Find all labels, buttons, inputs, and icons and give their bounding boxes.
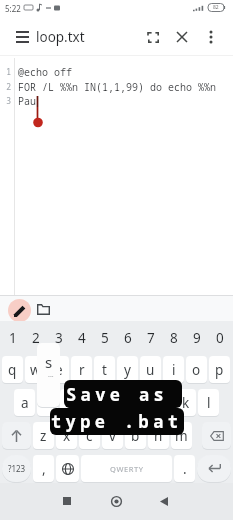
button[interactable]: 5 xyxy=(94,324,115,351)
staticText: 3 xyxy=(55,329,63,347)
staticText: 3 xyxy=(6,95,11,106)
button[interactable] xyxy=(102,487,130,515)
staticText: y xyxy=(124,361,131,379)
staticText: 2 xyxy=(32,329,40,347)
button[interactable] xyxy=(170,25,194,49)
staticText: 5:22 xyxy=(5,3,21,14)
button[interactable]: 2 xyxy=(25,324,46,351)
button[interactable]: 7 xyxy=(140,324,161,351)
button[interactable]: 0 xyxy=(209,324,230,351)
button[interactable]: n xyxy=(148,422,169,449)
button[interactable]: y xyxy=(117,356,138,383)
button[interactable] xyxy=(8,299,31,322)
staticText: , xyxy=(42,460,46,478)
button[interactable]: c xyxy=(79,422,100,449)
staticText: 8 xyxy=(170,329,178,347)
staticText: l xyxy=(207,394,211,412)
button[interactable]: l xyxy=(198,389,219,416)
staticText: o xyxy=(192,361,201,379)
button[interactable]: . xyxy=(174,455,195,482)
button[interactable] xyxy=(199,25,223,49)
button[interactable]: a xyxy=(14,389,35,416)
button[interactable]: x xyxy=(56,422,77,449)
button[interactable]: 9 xyxy=(186,324,207,351)
staticText: 4 xyxy=(78,329,86,347)
button[interactable]: ?123 xyxy=(2,455,31,482)
staticText: ... xyxy=(48,370,54,380)
button[interactable]: w xyxy=(25,356,46,383)
staticText: 9 xyxy=(193,329,201,347)
button[interactable]: b xyxy=(125,422,146,449)
button[interactable]: u xyxy=(140,356,161,383)
button[interactable]: r xyxy=(71,356,92,383)
staticText: 6 xyxy=(124,329,132,347)
staticText: r xyxy=(79,361,85,379)
button[interactable]: i xyxy=(163,356,184,383)
button[interactable]: p xyxy=(209,356,230,383)
staticText: Pau xyxy=(18,94,36,107)
staticText: z xyxy=(40,427,47,445)
staticText: s xyxy=(44,394,51,412)
staticText: 1 xyxy=(9,329,17,347)
button[interactable]: f xyxy=(83,389,104,416)
button[interactable] xyxy=(53,487,81,515)
button[interactable]: k xyxy=(175,389,196,416)
staticText: 7 xyxy=(147,329,155,347)
staticText: s xyxy=(45,352,53,372)
button[interactable]: 6 xyxy=(117,324,138,351)
staticText: x xyxy=(63,427,71,445)
button[interactable]: j xyxy=(152,389,173,416)
button[interactable]: q xyxy=(2,356,23,383)
staticText: n xyxy=(154,427,163,445)
button[interactable] xyxy=(197,455,231,482)
staticText: 5 xyxy=(101,329,109,347)
button[interactable] xyxy=(202,422,231,449)
button[interactable]: d xyxy=(60,389,81,416)
button[interactable]: h xyxy=(129,389,150,416)
staticText: g xyxy=(112,394,121,412)
button[interactable]: 4 xyxy=(71,324,92,351)
button[interactable] xyxy=(2,422,31,449)
button[interactable] xyxy=(56,455,79,482)
staticText: 1 xyxy=(6,66,11,77)
staticText: a xyxy=(21,394,29,412)
button[interactable]: z xyxy=(33,422,54,449)
staticText: j xyxy=(161,394,165,412)
staticText: 2 xyxy=(6,81,11,92)
button[interactable]: t xyxy=(94,356,115,383)
staticText: w xyxy=(30,361,41,379)
staticText: . xyxy=(183,460,187,478)
staticText: ?123 xyxy=(8,463,26,474)
staticText: h xyxy=(135,394,144,412)
staticText: i xyxy=(172,361,176,379)
staticText: e xyxy=(55,361,63,379)
staticText: d xyxy=(66,394,75,412)
staticText: b xyxy=(131,427,140,445)
button[interactable]: s xyxy=(37,389,58,416)
button[interactable]: QWERTY xyxy=(81,455,172,482)
staticText: QWERTY xyxy=(110,464,144,474)
staticText: q xyxy=(8,361,17,379)
button[interactable]: 8 xyxy=(163,324,184,351)
button[interactable]: m xyxy=(171,422,192,449)
button[interactable] xyxy=(141,25,165,49)
button[interactable] xyxy=(150,487,178,515)
button[interactable]: e xyxy=(48,356,69,383)
button[interactable]: 3 xyxy=(48,324,69,351)
button[interactable]: 1 xyxy=(2,324,23,351)
button[interactable]: , xyxy=(33,455,54,482)
button[interactable] xyxy=(10,24,36,50)
button[interactable]: o xyxy=(186,356,207,383)
staticText: loop.txt xyxy=(36,28,85,46)
button[interactable] xyxy=(33,299,54,320)
button[interactable]: v xyxy=(102,422,123,449)
staticText: m xyxy=(175,427,188,445)
staticText: t xyxy=(102,361,107,379)
staticText: k xyxy=(182,394,190,412)
staticText: p xyxy=(215,361,224,379)
staticText: u xyxy=(146,361,155,379)
button[interactable]: g xyxy=(106,389,127,416)
staticText: Save as xyxy=(66,383,169,406)
staticText: type .bat xyxy=(51,410,183,433)
